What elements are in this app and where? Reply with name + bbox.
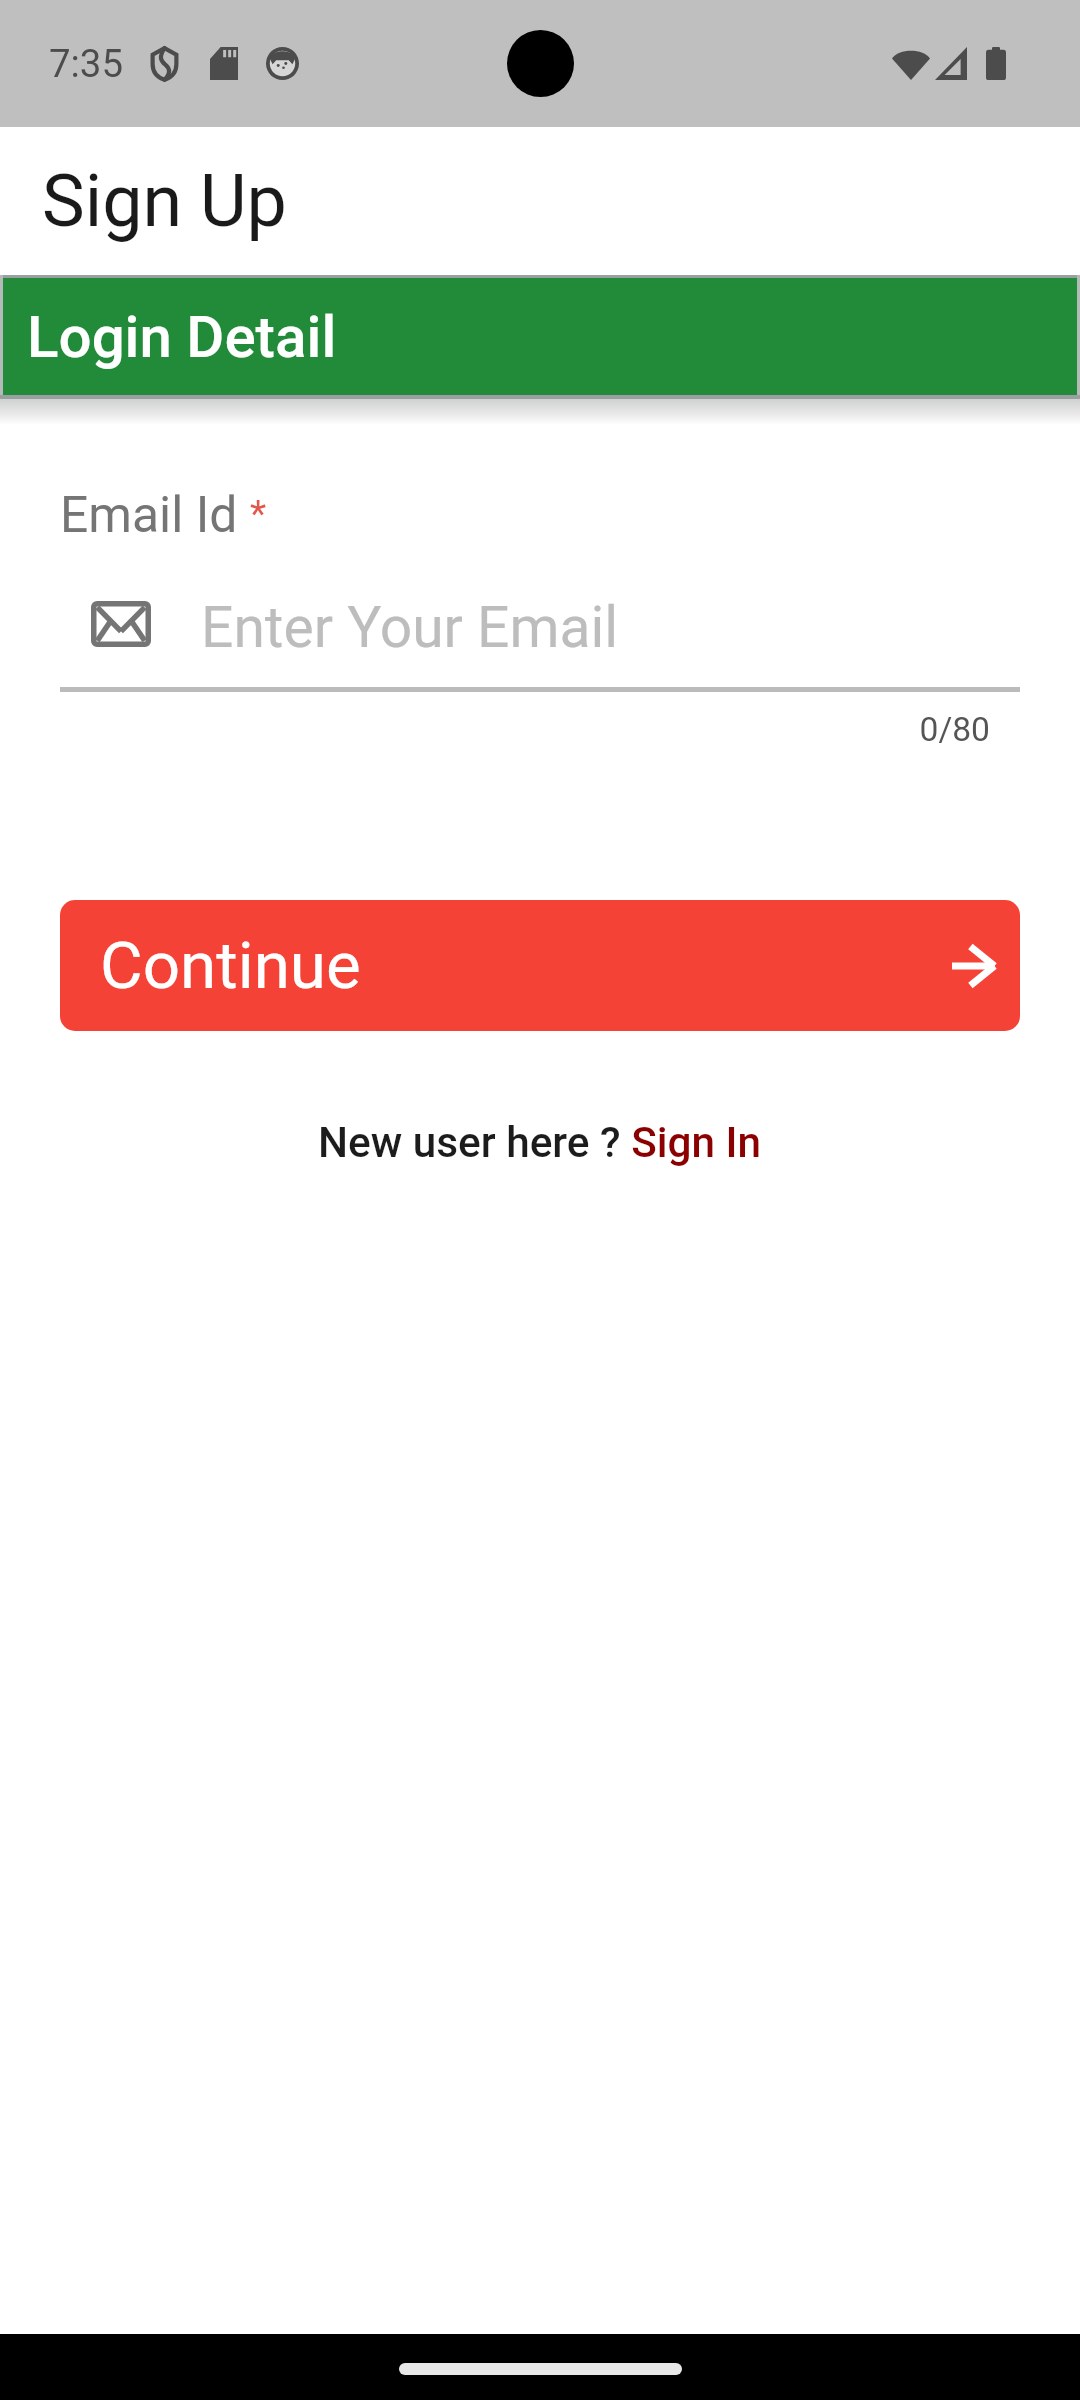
button[interactable]: New user here ? Sign In (318, 1118, 762, 1168)
staticText: Sign Up (42, 159, 287, 243)
staticText: 7:35 (49, 41, 124, 86)
button[interactable]: Enter Your Email (60, 594, 1020, 654)
button[interactable]: Continue (60, 900, 1020, 1031)
button[interactable]: Login Detail (3, 278, 1077, 395)
staticText: Enter Your Email (201, 594, 619, 654)
staticText: 0/80 (60, 710, 990, 749)
other: Continue (952, 943, 998, 989)
staticText: Email Id (60, 486, 238, 544)
staticText: * (250, 491, 267, 535)
staticText: Continue (100, 927, 361, 1004)
staticText: Login Detail (27, 303, 337, 371)
